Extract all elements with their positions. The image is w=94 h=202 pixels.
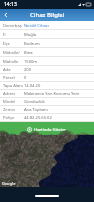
staticText: Demirbaş Adı — [3, 23, 23, 29]
staticText: İl — [3, 32, 23, 38]
button[interactable]: Back — [0, 9, 12, 21]
staticText: 0 — [24, 75, 27, 81]
staticText: 1500m — [24, 59, 38, 65]
staticText: Nestlé Cihazı — [24, 23, 49, 29]
staticText: Mahalle/Köy — [3, 50, 23, 56]
button[interactable]: Map — [0, 135, 94, 202]
staticText: Haritada Göster — [34, 126, 67, 132]
button[interactable]: Adresi — [0, 90, 94, 98]
staticText: İlçe — [3, 41, 23, 47]
staticText: 44.82.25.65.02 — [24, 115, 52, 121]
staticText: Mahalle Tipi — [3, 59, 23, 65]
staticText: Model — [3, 99, 23, 105]
staticText: Parsel — [3, 75, 23, 81]
button[interactable]: Ada — [0, 66, 94, 74]
staticText: 200 — [24, 67, 32, 73]
button[interactable]: Haritada Göster — [0, 122, 94, 135]
button[interactable]: Zemin Tipi — [0, 106, 94, 114]
staticText: Ada — [3, 67, 23, 73]
staticText: Adresi — [3, 91, 23, 97]
staticText: Muğla — [24, 32, 37, 38]
staticText: Makinenin Son Konumu Yeni Mahallesi — [24, 91, 93, 97]
staticText: 14:13 — [4, 1, 17, 8]
staticText: Poliçe — [3, 115, 23, 121]
button[interactable]: Demirbaş Adı — [0, 21, 94, 30]
button[interactable]: İlçe — [0, 39, 94, 48]
button[interactable]: Model — [0, 98, 94, 106]
staticText: Google — [2, 181, 16, 186]
staticText: Cihaz Bilgisi — [30, 11, 65, 19]
button[interactable]: Mahalle/Köy — [0, 48, 94, 57]
staticText: Ana Toplamı — [24, 107, 48, 113]
staticText: Bodrum — [24, 41, 40, 47]
staticText: Gündüzlük — [24, 99, 45, 105]
button[interactable]: Mahalle Tipi — [0, 57, 94, 66]
staticText: Zemin Tipi — [3, 107, 23, 113]
staticText: Bina — [24, 50, 33, 56]
staticText: Tapu Alanı — [3, 83, 23, 89]
button[interactable]: İl — [0, 30, 94, 39]
button[interactable]: Poliçe — [0, 114, 94, 122]
button[interactable]: Tapu Alanı — [0, 82, 94, 90]
button[interactable]: Parsel — [0, 74, 94, 82]
staticText: 14.04.20 — [24, 83, 41, 89]
